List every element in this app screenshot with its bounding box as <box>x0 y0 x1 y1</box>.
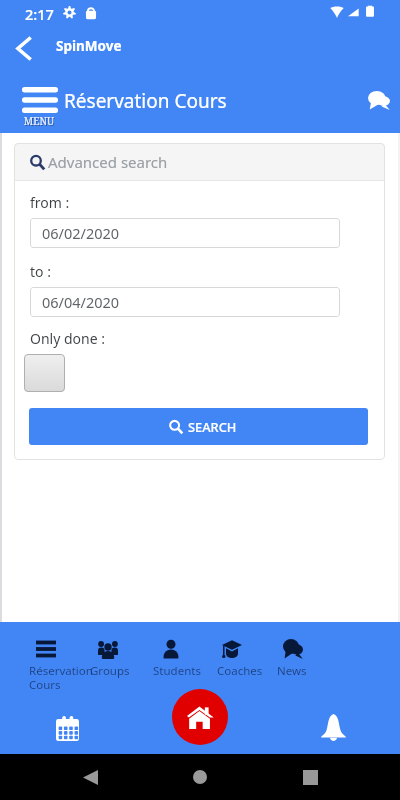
button[interactable]: Back <box>70 757 110 797</box>
button[interactable]: 06/02/2020 <box>30 218 340 248</box>
button[interactable]: Menu <box>18 87 58 127</box>
staticText: Only done : <box>30 329 105 348</box>
staticText: SpinMove <box>56 37 122 55</box>
button[interactable]: Home <box>180 757 220 797</box>
button[interactable] <box>77 622 139 682</box>
staticText: Advanced search <box>48 152 168 172</box>
button[interactable]: Back <box>6 30 42 66</box>
button[interactable]: Advanced search <box>14 143 385 180</box>
button[interactable]: Only done checkbox <box>24 354 65 392</box>
button[interactable]: Calendar <box>45 706 90 751</box>
button[interactable]: Notifications <box>311 705 356 750</box>
button[interactable] <box>15 622 77 682</box>
button[interactable]: Home <box>172 689 228 745</box>
staticText: MENU <box>21 114 57 128</box>
button[interactable]: Messages <box>359 80 399 120</box>
staticText: Réservation Cours <box>64 88 227 114</box>
staticText: 06/02/2020 <box>42 223 120 243</box>
staticText: to : <box>30 262 51 281</box>
staticText: Cours <box>29 677 61 693</box>
staticText: MENU <box>22 115 58 129</box>
staticText: from : <box>30 193 70 212</box>
staticText: 06/04/2020 <box>42 292 120 312</box>
staticText: Réservation <box>29 663 93 679</box>
staticText: News <box>277 663 307 679</box>
staticText: SEARCH <box>188 418 237 435</box>
staticText: 2:17 <box>25 4 54 24</box>
button[interactable]: Recents <box>290 757 330 797</box>
button[interactable] <box>140 622 202 682</box>
button[interactable]: SEARCH <box>29 408 368 445</box>
button[interactable] <box>201 622 263 682</box>
staticText: Students <box>153 663 201 679</box>
staticText: Coaches <box>217 663 263 679</box>
button[interactable] <box>262 622 324 682</box>
staticText: Groups <box>90 663 130 679</box>
button[interactable]: 06/04/2020 <box>30 287 340 317</box>
